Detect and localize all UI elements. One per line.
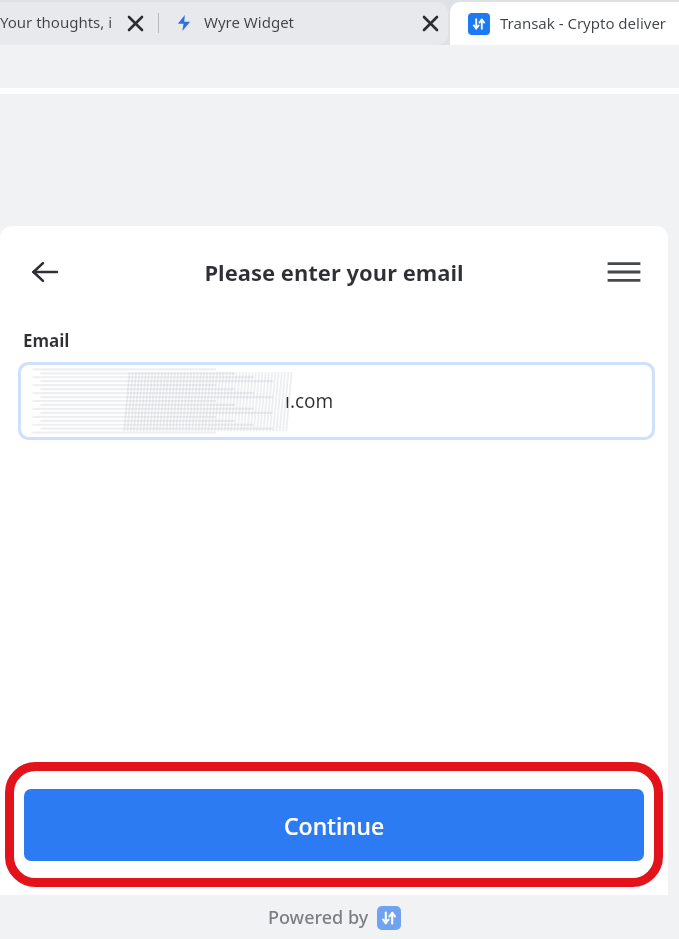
staticText: Your thoughts, i: [0, 12, 113, 32]
button[interactable]: Continue: [24, 789, 644, 861]
button[interactable]: Back: [22, 249, 68, 295]
button[interactable]: [0, 2, 448, 45]
staticText: Email: [23, 329, 70, 352]
button[interactable]: Menu: [601, 249, 647, 295]
staticText: Wyre Widget: [204, 12, 295, 32]
staticText: Continue: [284, 810, 385, 841]
button[interactable]: ı.com: [18, 362, 655, 440]
staticText: Transak - Crypto deliver: [500, 13, 667, 33]
button[interactable]: Close tab: [120, 8, 150, 38]
button[interactable]: Close tab: [415, 8, 445, 38]
staticText: ı.com: [285, 388, 334, 414]
staticText: Powered by: [268, 905, 369, 930]
button[interactable]: Transak - Crypto deliver: [450, 2, 679, 45]
staticText: Please enter your email: [204, 257, 464, 287]
button[interactable]: Powered by: [268, 905, 401, 930]
